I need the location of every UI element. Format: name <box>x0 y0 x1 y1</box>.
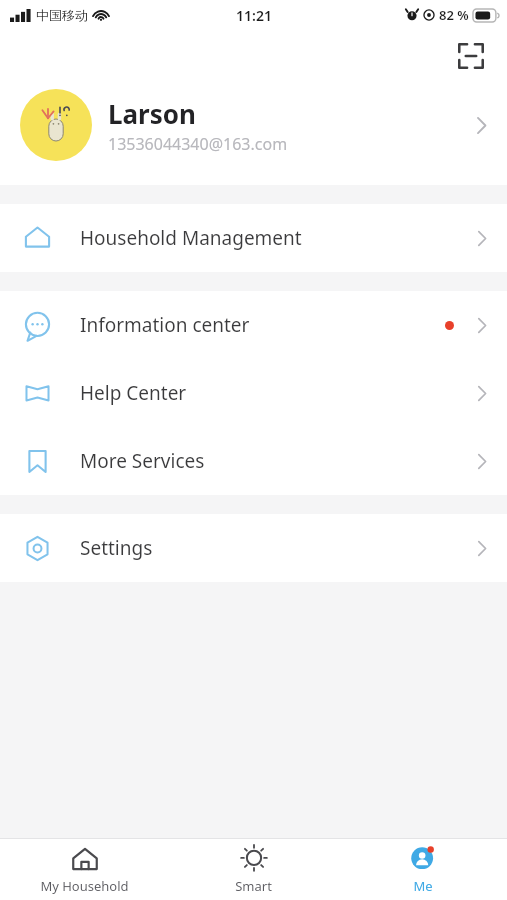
button[interactable]: Help Center <box>0 359 507 427</box>
button[interactable]: Larson <box>0 82 507 168</box>
staticText: More Services <box>80 448 477 474</box>
staticText: 82 % <box>439 6 469 24</box>
staticText: Larson <box>108 96 196 131</box>
staticText: Settings <box>80 535 477 561</box>
staticText: Me <box>413 877 433 895</box>
button[interactable]: Settings <box>0 514 507 582</box>
staticText: 13536044340@163.com <box>108 133 288 155</box>
button[interactable]: Smart <box>169 839 338 900</box>
staticText: My Household <box>40 877 129 895</box>
button[interactable]: Scan QR code <box>451 36 491 76</box>
button[interactable]: Me <box>338 839 507 900</box>
staticText: Household Management <box>80 225 477 251</box>
staticText: Information center <box>80 312 445 338</box>
staticText: Smart <box>235 877 272 895</box>
button[interactable]: My Household <box>0 839 169 900</box>
staticText: 11:21 <box>236 6 272 25</box>
button[interactable]: Information center <box>0 291 507 359</box>
staticText: Help Center <box>80 380 477 406</box>
button[interactable]: More Services <box>0 427 507 495</box>
button[interactable]: Household Management <box>0 204 507 272</box>
staticText: 中国移动 <box>36 7 88 23</box>
